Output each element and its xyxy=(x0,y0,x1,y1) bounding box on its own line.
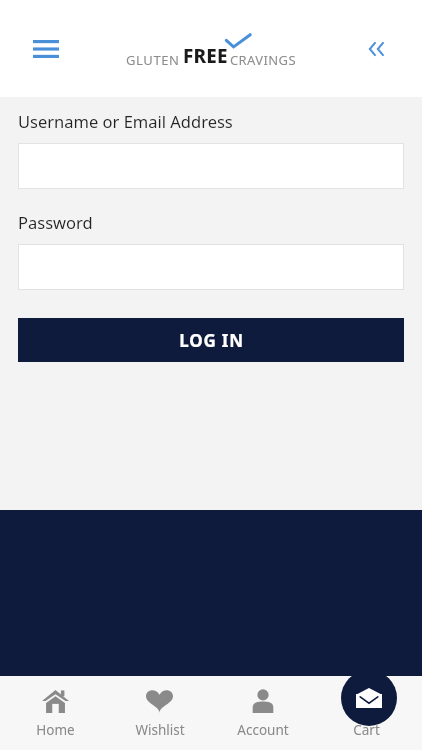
button[interactable] xyxy=(18,244,404,290)
staticText: GLUTEN xyxy=(126,51,180,69)
staticText: Cart xyxy=(353,721,380,739)
button[interactable]: Wishlist xyxy=(112,681,207,745)
button[interactable]: Cart xyxy=(319,681,414,745)
button[interactable]: Messages xyxy=(341,670,397,726)
staticText: Password xyxy=(18,211,93,233)
staticText: FREE xyxy=(183,43,228,69)
staticText: Wishlist xyxy=(135,721,185,739)
staticText: Username or Email Address xyxy=(18,110,233,132)
button[interactable]: Menu xyxy=(24,27,68,71)
button[interactable]: LOG IN xyxy=(18,318,404,362)
staticText: Home xyxy=(36,721,75,739)
button[interactable] xyxy=(18,143,404,189)
staticText: LOG IN xyxy=(179,329,244,352)
staticText: CRAVINGS xyxy=(230,51,296,69)
staticText: Account xyxy=(237,721,289,739)
button[interactable]: Collapse xyxy=(357,27,401,71)
button[interactable]: Account xyxy=(215,681,310,745)
button[interactable]: Home xyxy=(8,681,103,745)
